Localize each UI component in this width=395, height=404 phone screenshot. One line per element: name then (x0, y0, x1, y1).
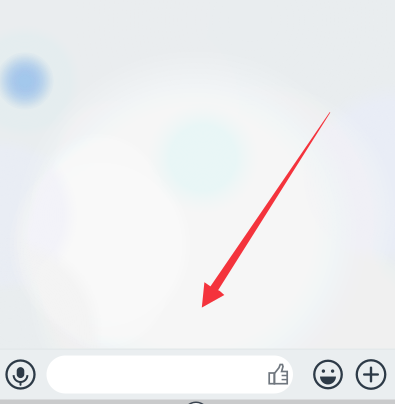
button[interactable]: Audio message (5, 359, 35, 389)
button[interactable]: Message field (46, 355, 293, 393)
button[interactable]: More options (356, 359, 386, 389)
button[interactable]: Stickers (305, 359, 335, 389)
